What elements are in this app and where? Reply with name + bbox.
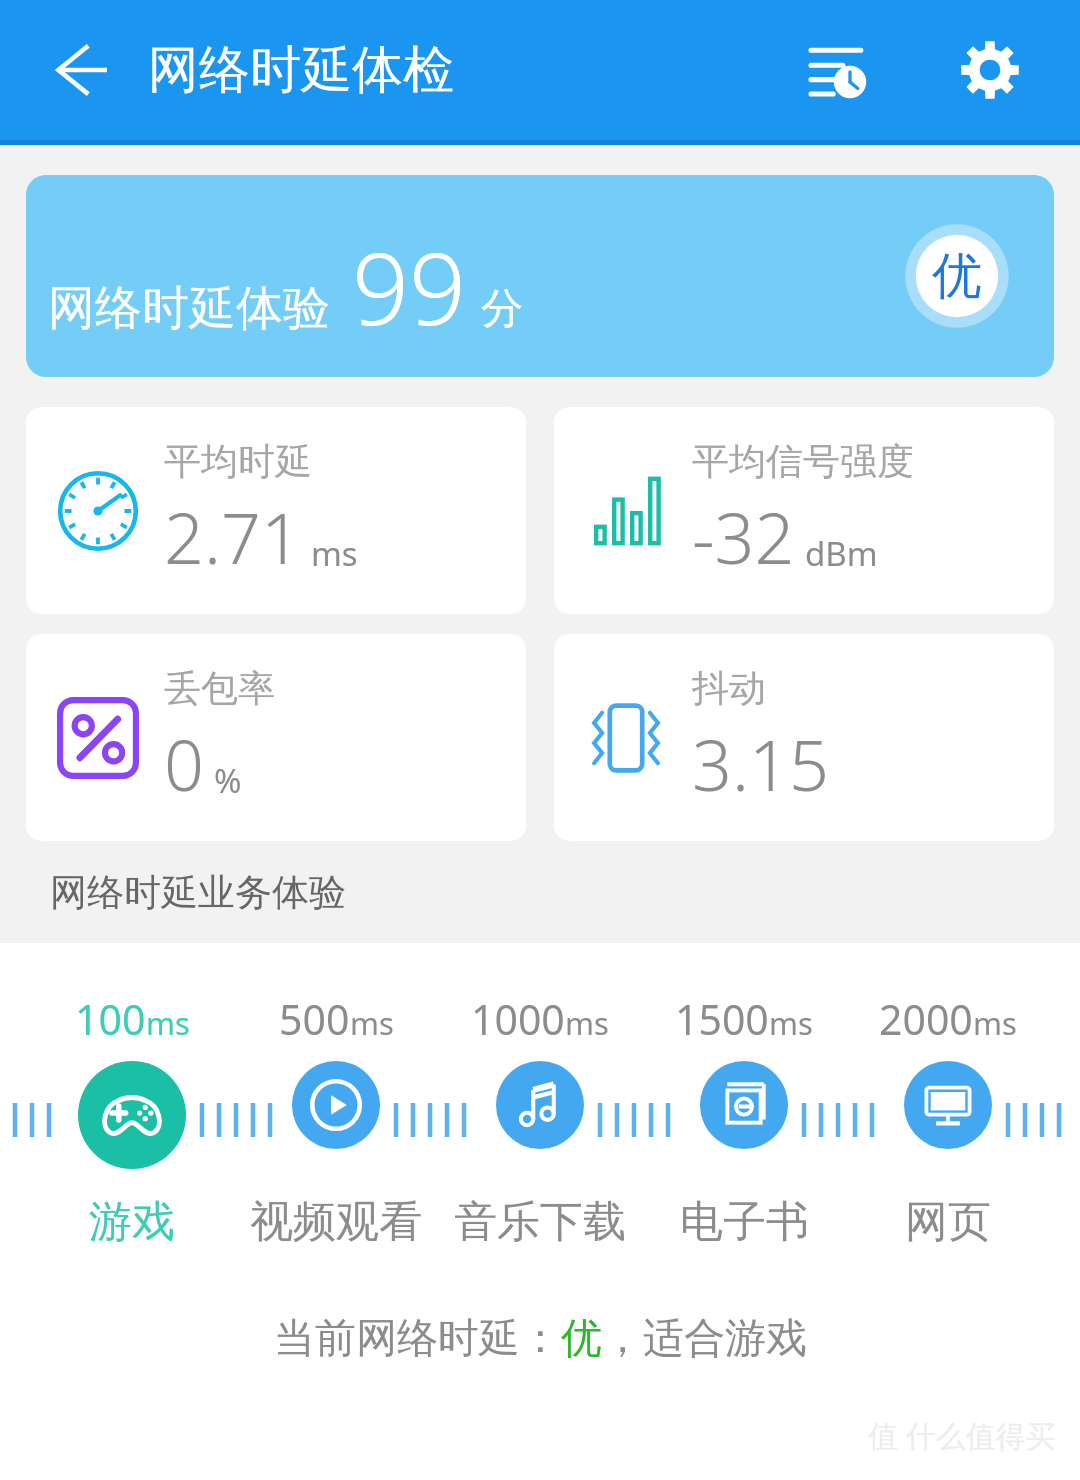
button[interactable]: 网络时延体验 — [26, 175, 1054, 377]
staticText: -32 — [692, 489, 795, 584]
button[interactable]: Settings — [940, 20, 1040, 120]
staticText: 0 — [164, 716, 204, 811]
staticText: 抖动 — [692, 665, 766, 712]
button[interactable]: 平均信号强度 — [554, 407, 1054, 614]
staticText: % — [214, 758, 242, 803]
staticText: 1500 — [675, 991, 769, 1047]
staticText: 电子书 — [680, 1195, 809, 1249]
staticText: 分 — [481, 283, 523, 336]
staticText: 网络时延体验 — [48, 279, 330, 338]
staticText: 100 — [75, 991, 146, 1047]
button[interactable]: 网页 — [904, 1061, 992, 1149]
button[interactable]: History — [788, 20, 888, 120]
staticText: 3.15 — [692, 716, 829, 811]
staticText: 丢包率 — [164, 665, 275, 712]
staticText: 500 — [279, 991, 350, 1047]
staticText: 游戏 — [89, 1195, 175, 1249]
staticText: 平均时延 — [164, 438, 312, 485]
staticText: 2000 — [879, 991, 973, 1047]
button[interactable]: 丢包率 — [26, 634, 526, 841]
staticText: ms — [146, 1002, 190, 1044]
staticText: 2.71 — [164, 489, 301, 584]
staticText: 网络时延业务体验 — [50, 869, 346, 916]
button[interactable]: 抖动 — [554, 634, 1054, 841]
button[interactable]: 电子书 — [700, 1061, 788, 1149]
staticText: dBm — [805, 531, 878, 576]
staticText: 优 — [932, 245, 982, 308]
staticText: ms — [769, 1002, 813, 1044]
button[interactable]: 视频观看 — [292, 1061, 380, 1149]
staticText: 网页 — [905, 1195, 991, 1249]
staticText: 当前网络时延： — [274, 1313, 561, 1365]
button[interactable]: 音乐下载 — [496, 1061, 584, 1149]
staticText: ，适合游戏 — [602, 1313, 807, 1365]
staticText: ms — [973, 1002, 1017, 1044]
staticText: 平均信号强度 — [692, 438, 914, 485]
staticText: 优 — [561, 1313, 602, 1365]
staticText: 音乐下载 — [454, 1195, 626, 1249]
staticText: 1000 — [471, 991, 565, 1047]
staticText: ms — [565, 1002, 609, 1044]
staticText: ms — [311, 531, 358, 576]
staticText: ms — [350, 1002, 394, 1044]
button[interactable]: 游戏 — [78, 1061, 186, 1169]
button[interactable]: 平均时延 — [26, 407, 526, 614]
staticText: 视频观看 — [250, 1195, 422, 1249]
button[interactable]: Back — [34, 24, 126, 116]
staticText: 网络时延体检 — [148, 38, 454, 102]
staticText: 99 — [352, 218, 467, 354]
staticText: 值 什么值得买 — [868, 1415, 1056, 1456]
